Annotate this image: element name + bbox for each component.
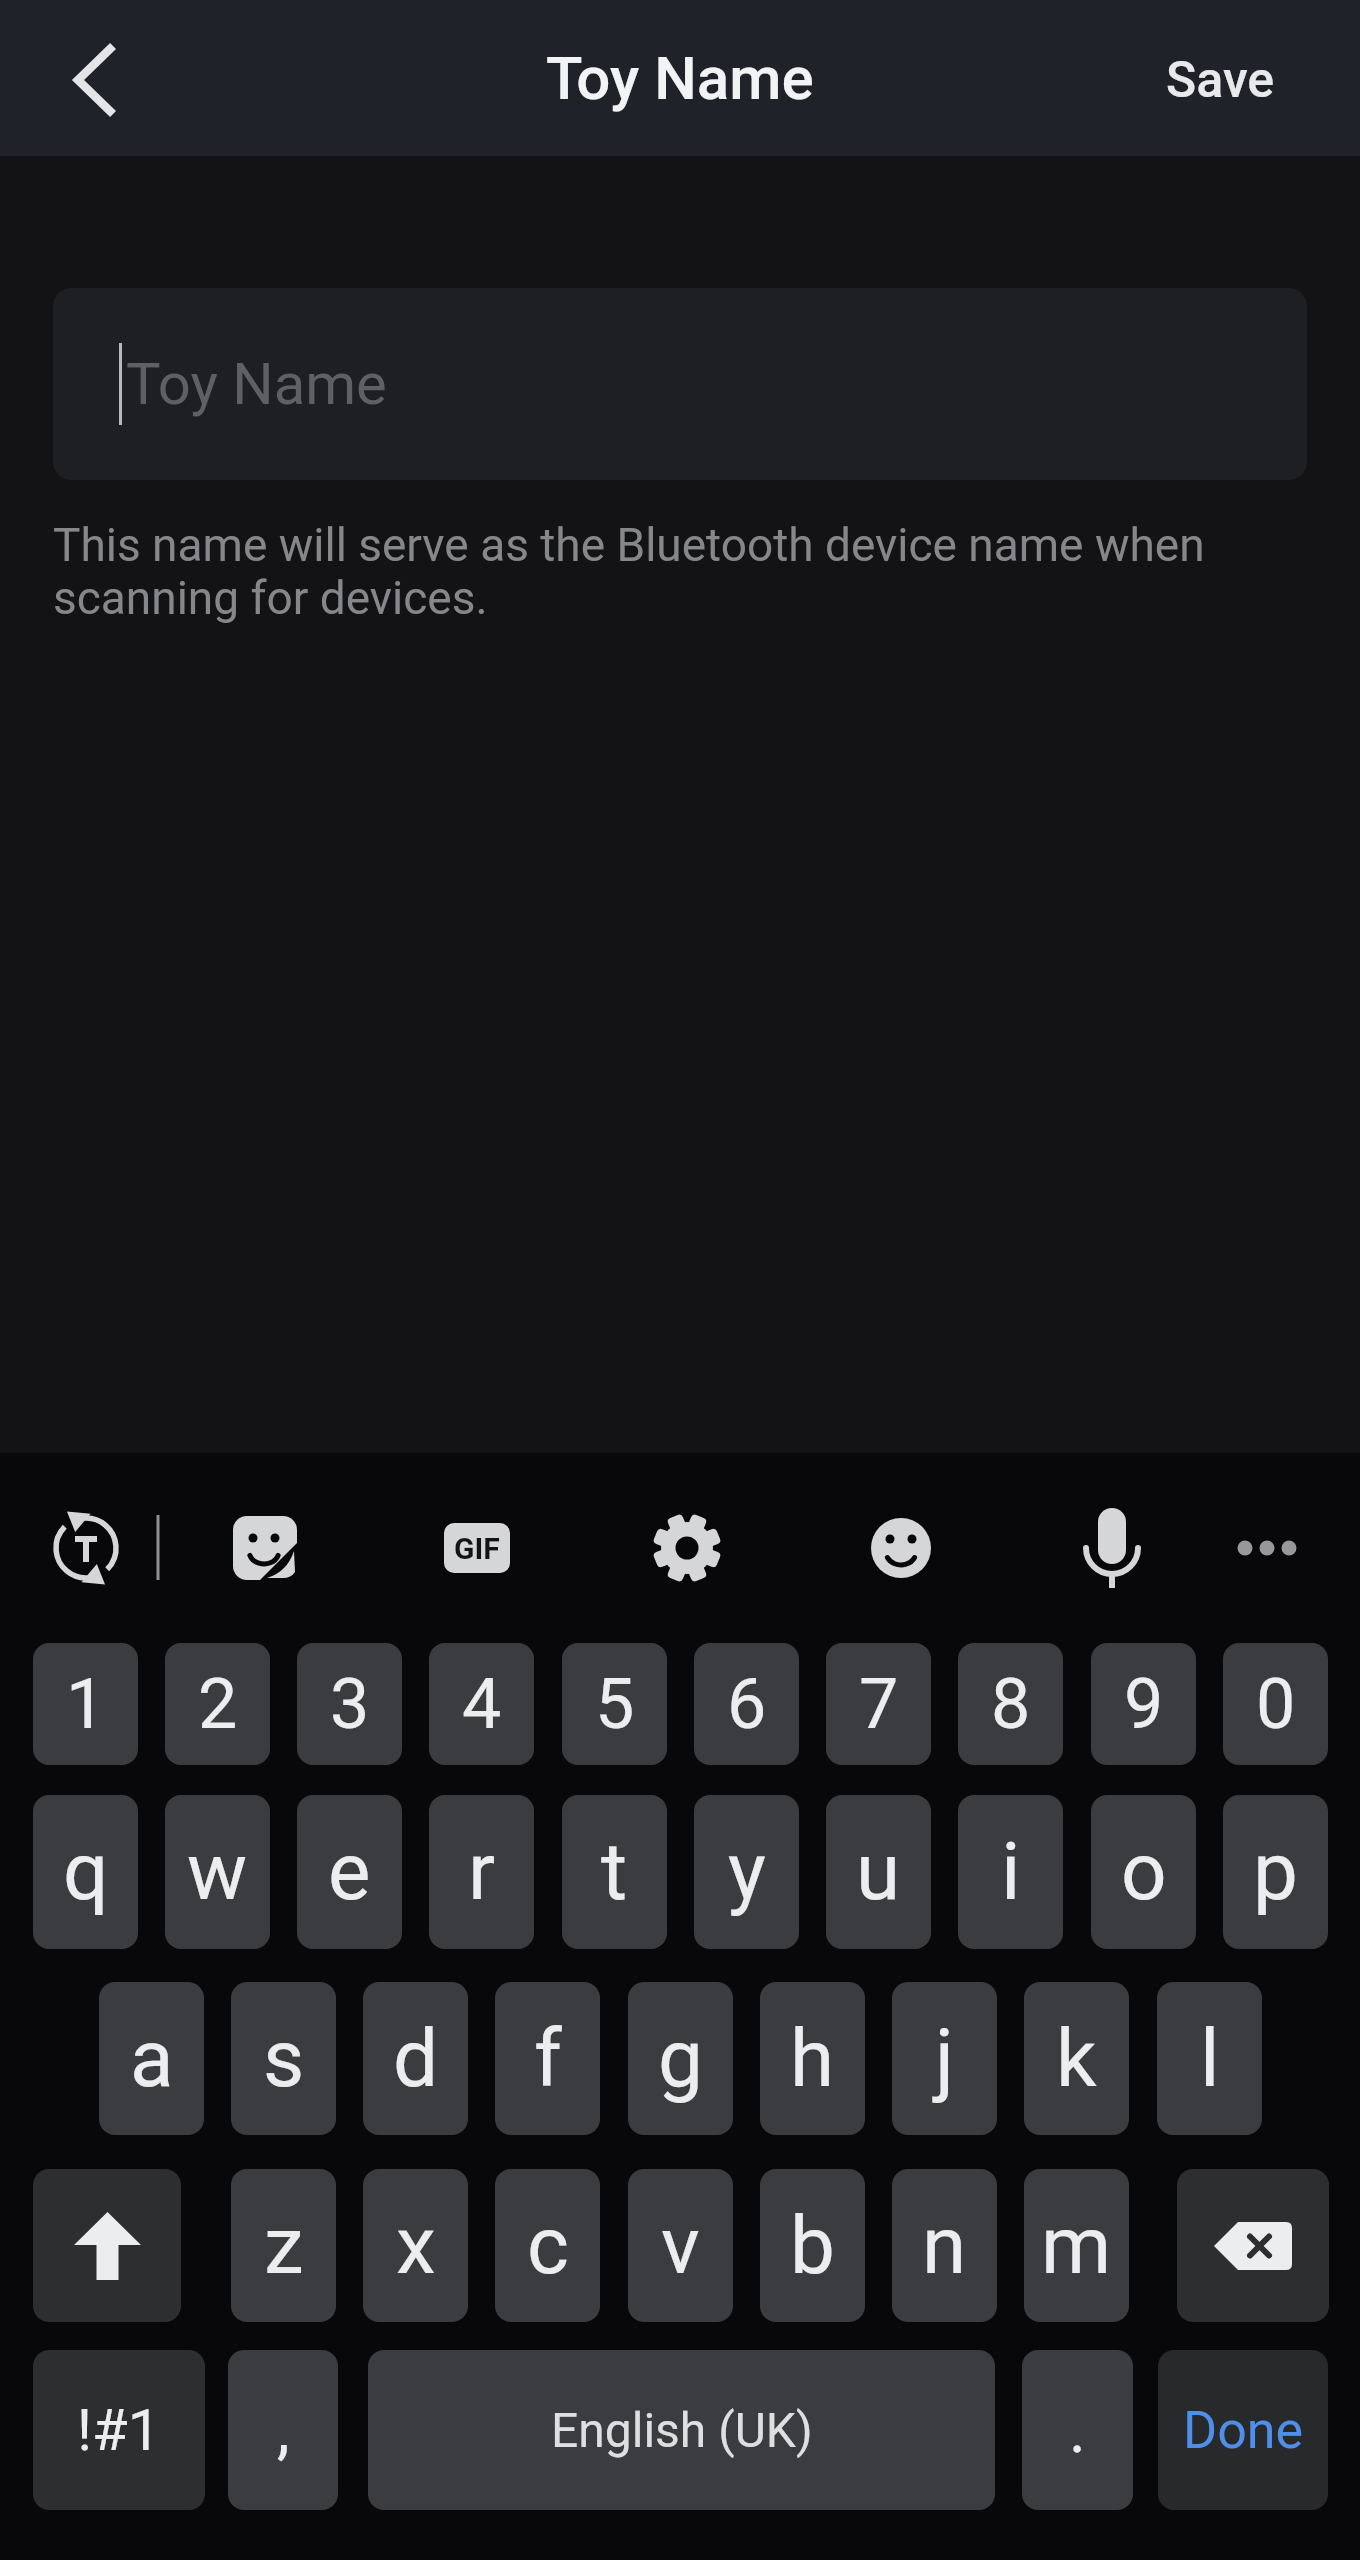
staticText: l: [1200, 2012, 1220, 2106]
staticText: 5: [595, 1663, 635, 1745]
button[interactable]: [40, 25, 150, 135]
button[interactable]: 0: [1223, 1643, 1328, 1765]
staticText: x: [396, 2199, 436, 2293]
button[interactable]: v: [628, 2169, 733, 2322]
button[interactable]: w: [165, 1795, 270, 1949]
button[interactable]: [432, 1503, 522, 1593]
button[interactable]: y: [694, 1795, 799, 1949]
button[interactable]: [856, 1503, 946, 1593]
staticText: 0: [1256, 1663, 1296, 1745]
button[interactable]: [33, 2169, 181, 2322]
button[interactable]: g: [628, 1982, 733, 2135]
staticText: Done: [1183, 2400, 1304, 2461]
staticText: w: [187, 1825, 248, 1919]
button[interactable]: a: [99, 1982, 204, 2135]
staticText: 1: [66, 1663, 106, 1745]
staticText: j: [935, 2012, 955, 2106]
button[interactable]: x: [363, 2169, 468, 2322]
button[interactable]: [642, 1503, 732, 1593]
button[interactable]: e: [297, 1795, 402, 1949]
button[interactable]: o: [1091, 1795, 1196, 1949]
button[interactable]: !#1: [33, 2350, 205, 2510]
button[interactable]: GIF: [444, 1523, 510, 1573]
button[interactable]: z: [231, 2169, 336, 2322]
staticText: 2: [198, 1663, 238, 1745]
button[interactable]: d: [363, 1982, 468, 2135]
staticText: 4: [462, 1663, 502, 1745]
staticText: g: [658, 2012, 703, 2106]
button[interactable]: 8: [958, 1643, 1063, 1765]
staticText: u: [856, 1825, 901, 1919]
staticText: q: [63, 1825, 109, 1919]
staticText: GIF: [454, 1531, 500, 1566]
staticText: i: [1001, 1825, 1021, 1919]
button[interactable]: ,: [228, 2350, 338, 2510]
button[interactable]: h: [760, 1982, 865, 2135]
staticText: n: [922, 2199, 967, 2293]
staticText: b: [790, 2199, 835, 2293]
staticText: o: [1121, 1825, 1167, 1919]
button[interactable]: j: [892, 1982, 997, 2135]
button[interactable]: b: [760, 2169, 865, 2322]
staticText: v: [661, 2199, 700, 2293]
button[interactable]: 1: [33, 1643, 138, 1765]
button[interactable]: q: [33, 1795, 138, 1949]
button[interactable]: 2: [165, 1643, 270, 1765]
button[interactable]: [1067, 1503, 1157, 1593]
button[interactable]: 4: [429, 1643, 534, 1765]
button[interactable]: English (UK): [368, 2350, 995, 2510]
staticText: s: [263, 2012, 305, 2106]
staticText: t: [601, 1825, 628, 1919]
staticText: 3: [330, 1663, 370, 1745]
staticText: e: [328, 1825, 371, 1919]
button[interactable]: [220, 1503, 310, 1593]
button[interactable]: 3: [297, 1643, 402, 1765]
button[interactable]: [1222, 1503, 1312, 1593]
staticText: !#1: [77, 2396, 161, 2464]
staticText: k: [1056, 2012, 1097, 2106]
staticText: 9: [1124, 1663, 1164, 1745]
staticText: ,: [277, 2393, 290, 2468]
staticText: Save: [1166, 51, 1275, 110]
button[interactable]: u: [826, 1795, 931, 1949]
button[interactable]: [1177, 2169, 1329, 2322]
staticText: c: [527, 2199, 569, 2293]
button[interactable]: 7: [826, 1643, 931, 1765]
staticText: Toy Name: [126, 350, 387, 418]
button[interactable]: p: [1223, 1795, 1328, 1949]
button[interactable]: s: [231, 1982, 336, 2135]
staticText: a: [130, 2012, 174, 2106]
staticText: Toy Name: [546, 43, 814, 113]
button[interactable]: f: [495, 1982, 600, 2135]
staticText: d: [393, 2012, 439, 2106]
button[interactable]: n: [892, 2169, 997, 2322]
staticText: English (UK): [551, 2402, 813, 2458]
button[interactable]: [41, 1503, 131, 1593]
button[interactable]: t: [562, 1795, 667, 1949]
button[interactable]: i: [958, 1795, 1063, 1949]
staticText: h: [790, 2012, 835, 2106]
staticText: This name will serve as the Bluetooth de…: [53, 518, 1205, 625]
staticText: r: [468, 1825, 496, 1919]
staticText: z: [264, 2199, 304, 2293]
staticText: p: [1253, 1825, 1298, 1919]
staticText: 7: [859, 1663, 899, 1745]
button[interactable]: 6: [694, 1643, 799, 1765]
button[interactable]: Done: [1158, 2350, 1328, 2510]
staticText: f: [534, 2012, 562, 2106]
button[interactable]: 5: [562, 1643, 667, 1765]
button[interactable]: .: [1022, 2350, 1133, 2510]
staticText: 8: [991, 1663, 1031, 1745]
button[interactable]: m: [1024, 2169, 1129, 2322]
button[interactable]: c: [495, 2169, 600, 2322]
staticText: .: [1069, 2393, 1086, 2468]
button[interactable]: k: [1024, 1982, 1129, 2135]
staticText: 6: [727, 1663, 767, 1745]
button[interactable]: r: [429, 1795, 534, 1949]
button[interactable]: Toy Name: [53, 288, 1307, 480]
button[interactable]: Save: [1120, 20, 1320, 140]
button[interactable]: l: [1157, 1982, 1262, 2135]
button[interactable]: 9: [1091, 1643, 1196, 1765]
staticText: m: [1041, 2199, 1112, 2293]
staticText: y: [728, 1825, 766, 1919]
